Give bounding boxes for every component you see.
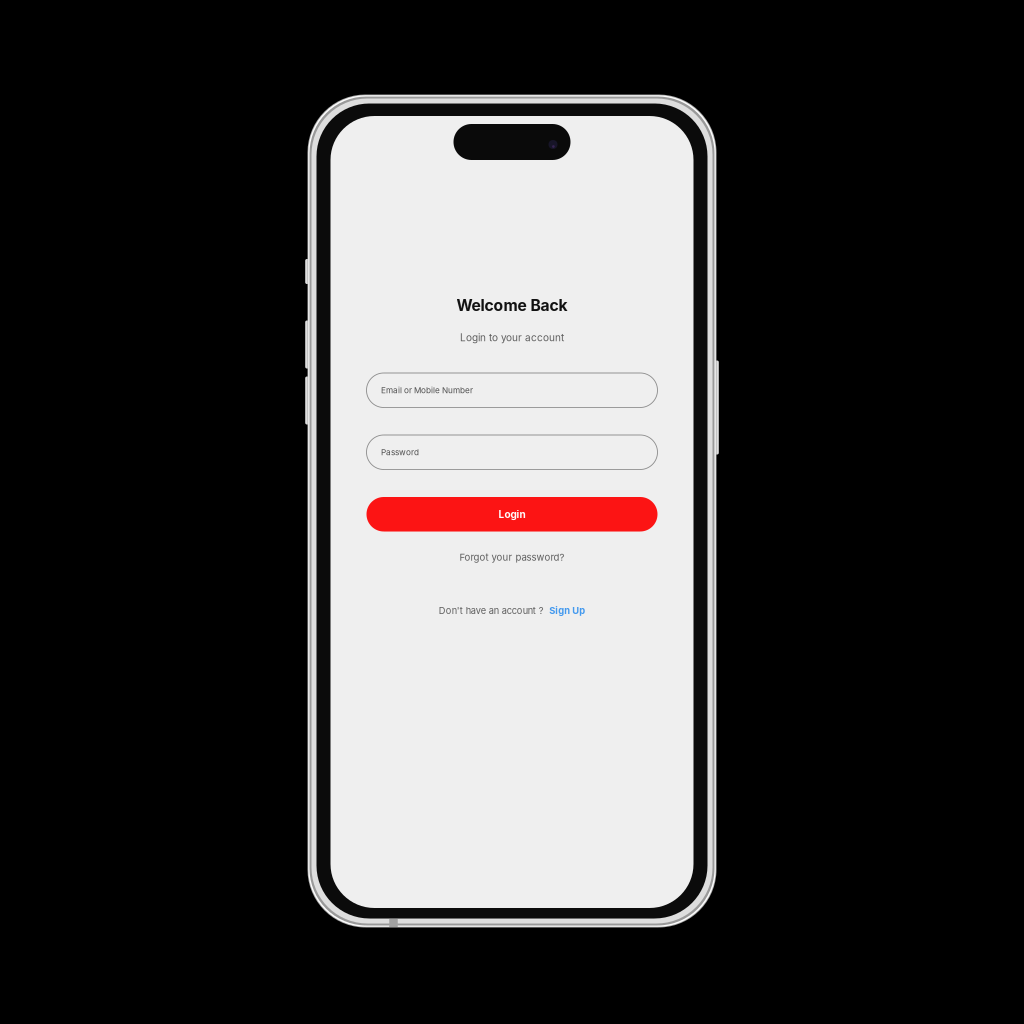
staticText: Login <box>498 508 525 520</box>
button[interactable]: Forgot your password? <box>451 547 572 567</box>
staticText: Sign Up <box>549 605 585 616</box>
staticText: Don't have an account ? <box>439 605 544 616</box>
staticText: Forgot your password? <box>459 551 564 563</box>
button[interactable]: Sign Up <box>549 601 585 620</box>
staticText: Email or Mobile Number <box>381 385 473 395</box>
staticText: Password <box>381 447 419 457</box>
staticText: Welcome Back <box>456 296 567 315</box>
button[interactable]: Login <box>366 497 657 531</box>
staticText: Login to your account <box>460 331 564 344</box>
button[interactable]: Password <box>366 435 657 469</box>
button[interactable]: Email or Mobile Number <box>366 373 657 407</box>
